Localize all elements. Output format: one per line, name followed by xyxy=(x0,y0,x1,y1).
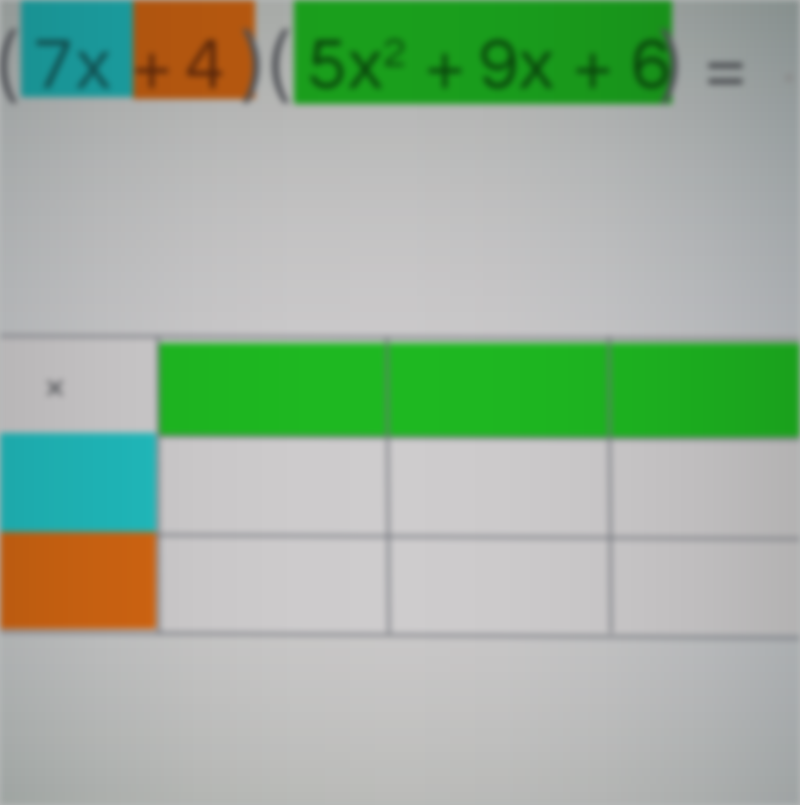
button[interactable]: product cell 4 times 6 xyxy=(610,537,800,635)
button[interactable]: product cell 4 times 9x xyxy=(388,537,610,635)
button[interactable]: product cell 7x times 6 xyxy=(610,437,800,537)
button[interactable]: product cell 7x times 5x squared xyxy=(158,437,388,537)
button[interactable]: multiply xyxy=(0,337,158,437)
button[interactable]: multiply xyxy=(0,0,800,805)
button[interactable]: row header 4 xyxy=(0,537,158,635)
button[interactable]: product cell 7x times 9x xyxy=(388,437,610,537)
button[interactable]: column header 6 xyxy=(610,337,800,437)
button[interactable]: row header 7x xyxy=(0,437,158,537)
button[interactable]: column header 9x xyxy=(388,337,610,437)
button[interactable]: column header 5x squared xyxy=(158,337,388,437)
button[interactable]: product cell 4 times 5x squared xyxy=(158,537,388,635)
button[interactable]: Problem: (7x + 4)(5x squared + 9x + 6) = xyxy=(0,0,800,110)
